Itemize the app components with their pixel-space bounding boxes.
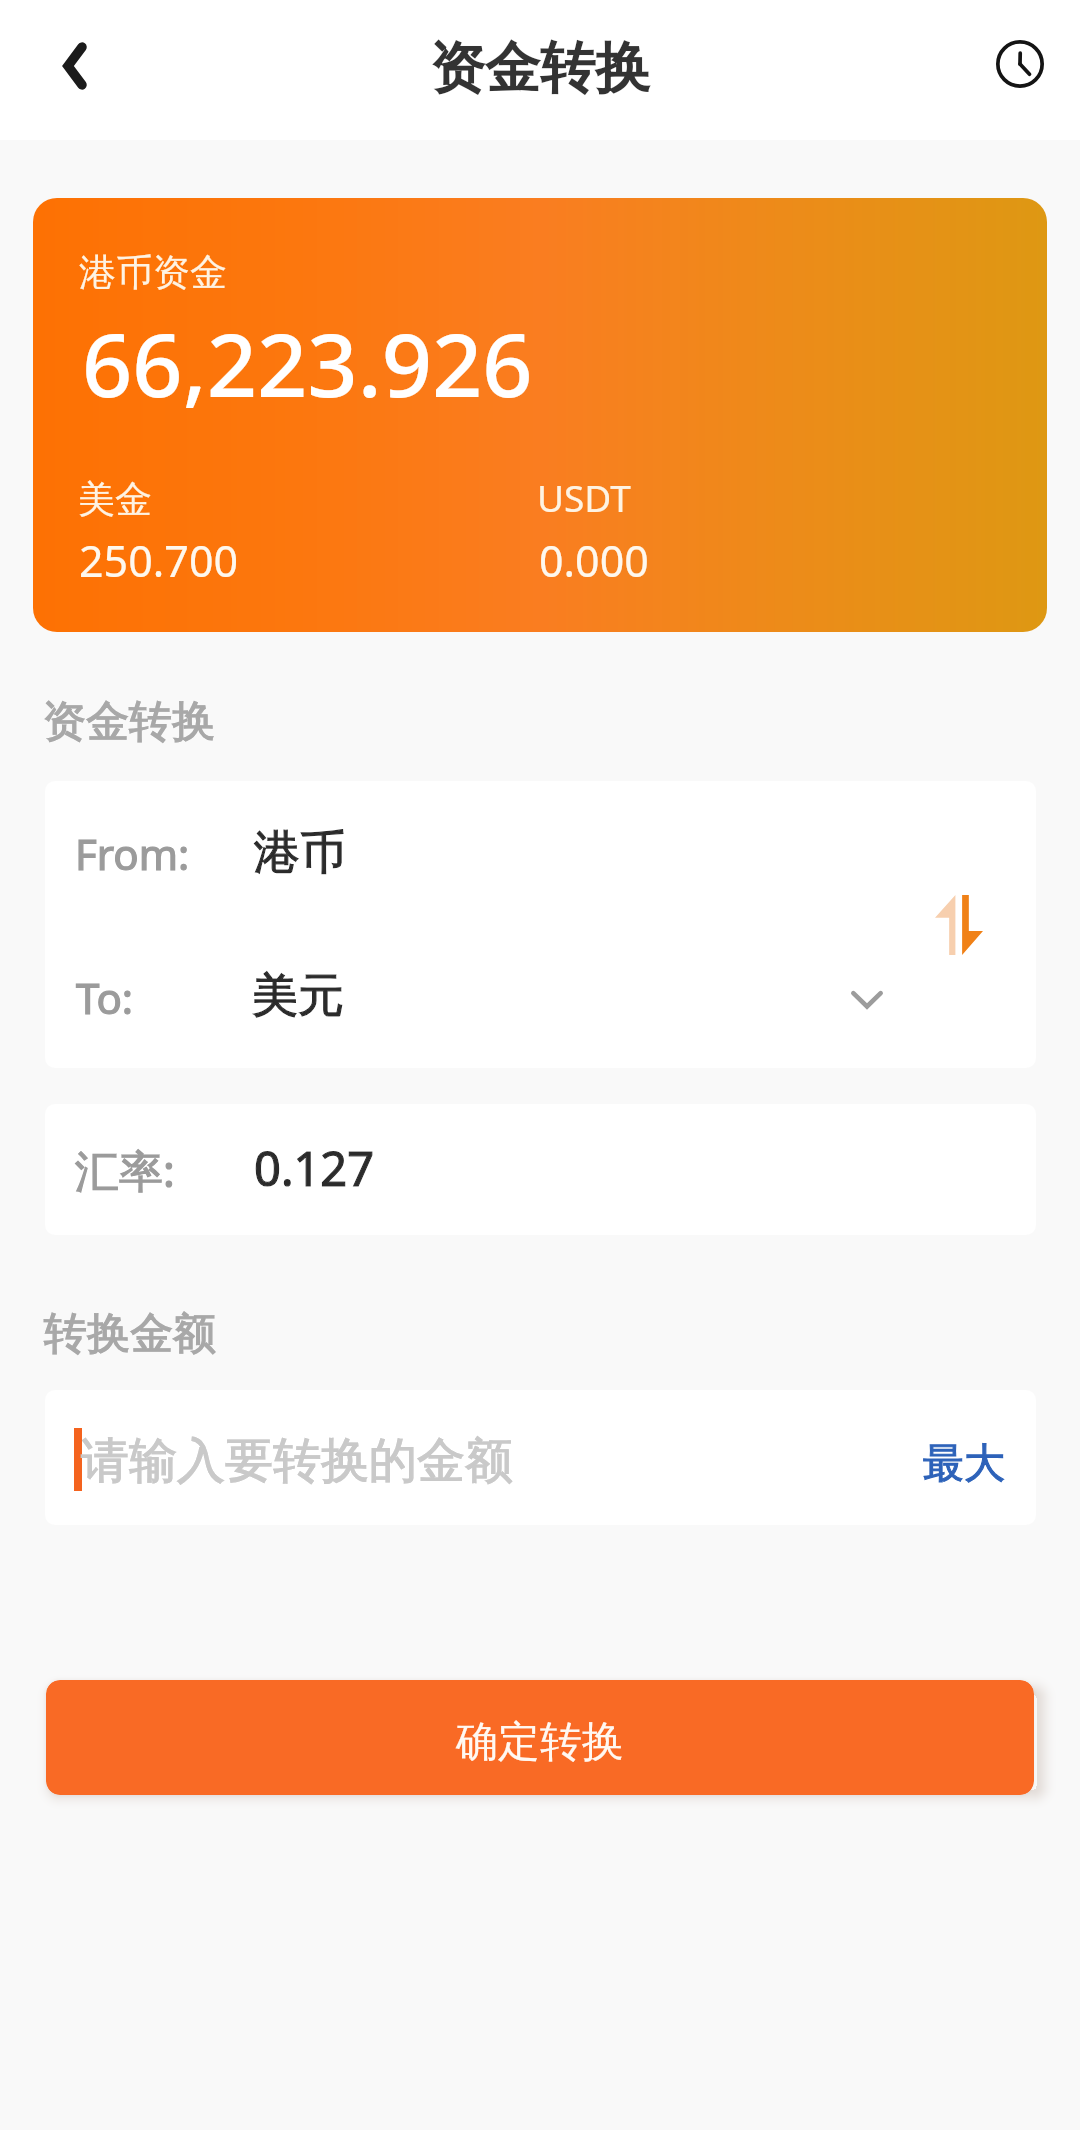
staticText: 0.000 <box>539 531 649 590</box>
staticText: 最大 <box>923 1438 1005 1490</box>
staticText: 0.127 <box>254 1136 375 1200</box>
staticText: 美元 <box>252 967 344 1025</box>
staticText: 请输入要转换的金额 <box>81 1431 513 1491</box>
button[interactable]: To: <box>45 924 1036 1068</box>
button[interactable]: 港币资金 <box>33 198 1047 632</box>
staticText: 请输入要转换的金额 <box>81 1431 513 1491</box>
staticText: 最大 <box>923 1438 1005 1490</box>
button[interactable]: Back <box>27 18 123 114</box>
staticText: 转换金额 <box>44 1307 216 1361</box>
staticText: 250.700 <box>79 531 239 590</box>
staticText: 转换金额 <box>44 1307 216 1361</box>
staticText: 汇率: <box>75 1140 175 1200</box>
button[interactable]: 请输入要转换的金额 <box>45 1390 1036 1525</box>
staticText: 确定转换 <box>456 1716 624 1769</box>
staticText: 港币资金 <box>79 249 227 296</box>
button[interactable]: 最大 <box>893 1396 1036 1520</box>
button[interactable]: Swap currencies <box>921 887 997 963</box>
staticText: From: <box>75 825 190 882</box>
staticText: 资金转换 <box>430 34 650 103</box>
button[interactable]: 汇率: <box>45 1104 1036 1235</box>
button[interactable]: 确定转换 <box>46 1680 1034 1795</box>
staticText: USDT <box>537 472 631 522</box>
staticText: 港币 <box>254 824 346 882</box>
button[interactable]: History <box>972 16 1068 112</box>
button[interactable]: From: <box>45 781 1036 924</box>
staticText: 汇率: <box>75 1140 175 1200</box>
staticText: 资金转换 <box>43 695 215 749</box>
staticText: 66,223.926 <box>82 303 533 423</box>
staticText: To: <box>76 969 134 1026</box>
staticText: 美金 <box>78 476 152 523</box>
staticText: 0.127 <box>254 1136 375 1200</box>
staticText: 港币 <box>254 824 346 882</box>
staticText: To: <box>76 969 134 1026</box>
staticText: 美元 <box>252 967 344 1025</box>
staticText: 资金转换 <box>43 695 215 749</box>
staticText: From: <box>75 825 190 882</box>
